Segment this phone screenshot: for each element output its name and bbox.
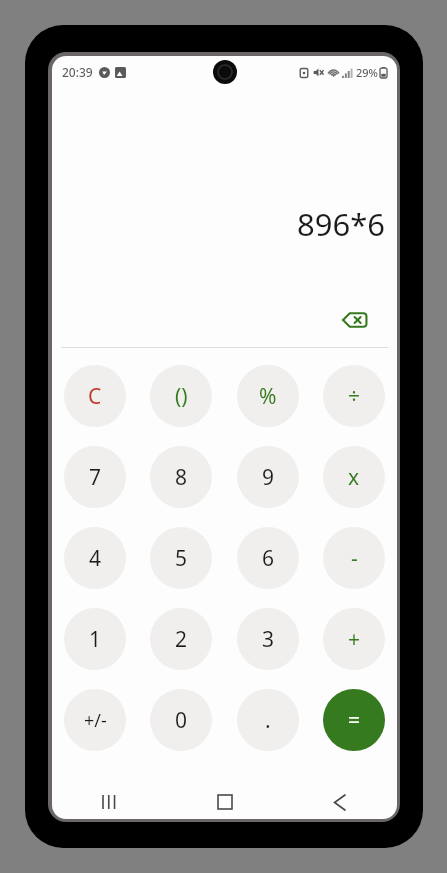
staticText: +/- [84,708,107,733]
button[interactable]: 9 [237,446,299,508]
button[interactable]: = [323,689,385,751]
button[interactable]: - [323,527,385,589]
staticText: - [351,544,358,573]
button[interactable]: Backspace [335,300,375,340]
staticText: ÷ [348,382,361,411]
button[interactable]: () [150,365,212,427]
staticText: () [175,382,188,411]
staticText: 8 [175,463,188,492]
button[interactable]: 8 [150,446,212,508]
staticText: 1 [89,625,102,654]
button[interactable]: ÷ [323,365,385,427]
button[interactable]: x [323,446,385,508]
staticText: 4 [89,544,102,573]
staticText: 20:39 [62,64,93,80]
staticText: = [348,706,361,735]
staticText: 2 [175,625,188,654]
staticText: 7 [89,463,102,492]
staticText: 5 [175,544,188,573]
staticText: C [88,382,102,411]
button[interactable]: 2 [150,608,212,670]
staticText: 29% [356,65,378,80]
staticText: 6 [262,544,275,573]
staticText: . [265,706,271,735]
staticText: % [259,382,277,411]
button[interactable]: 4 [64,527,126,589]
button[interactable]: % [237,365,299,427]
staticText: 0 [175,706,188,735]
button[interactable]: . [237,689,299,751]
button[interactable]: +/- [64,689,126,751]
button[interactable]: Recent apps [52,785,167,819]
staticText: 896*6 [296,203,385,245]
staticText: x [348,463,360,492]
button[interactable]: + [323,608,385,670]
staticText: + [348,625,361,654]
button[interactable]: 5 [150,527,212,589]
staticText: 9 [262,463,275,492]
button[interactable]: C [64,365,126,427]
button[interactable]: 1 [64,608,126,670]
button[interactable]: 0 [150,689,212,751]
button[interactable]: Home [167,785,282,819]
button[interactable]: 7 [64,446,126,508]
button[interactable]: 6 [237,527,299,589]
button[interactable]: Back [282,785,397,819]
button[interactable]: 3 [237,608,299,670]
staticText: 3 [262,625,275,654]
